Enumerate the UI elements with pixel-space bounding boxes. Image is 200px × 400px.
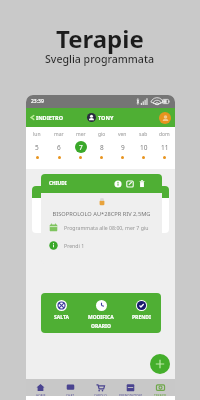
button[interactable]: sab <box>133 127 154 169</box>
other: Elimina <box>138 180 146 188</box>
button[interactable]: gio <box>91 127 112 169</box>
button[interactable]: ven <box>112 127 133 169</box>
staticText: gio <box>98 131 106 138</box>
staticText: mer <box>76 131 86 138</box>
button[interactable]: Aggiungi <box>150 354 170 374</box>
button[interactable]: PRENOTAZIONI <box>115 379 145 400</box>
staticText: TERAPIE <box>154 394 167 398</box>
staticText: lun <box>33 131 41 138</box>
staticText: INDIETRO <box>36 114 63 121</box>
staticText: CHIUDI <box>49 180 67 187</box>
staticText: ven <box>118 131 127 138</box>
staticText: MODIFICA <box>88 314 114 321</box>
button[interactable]: dom <box>154 127 175 169</box>
staticText: ORARIO <box>91 323 111 330</box>
staticText: CAROLO <box>94 394 107 398</box>
staticText: SALTA <box>54 314 69 321</box>
staticText: 11 <box>161 143 169 152</box>
button[interactable]: MODIFICA <box>81 293 121 333</box>
other: Info <box>114 180 122 188</box>
button[interactable]: mar <box>48 127 70 169</box>
button[interactable]: lun <box>26 127 48 169</box>
button[interactable]: HOME <box>26 379 55 400</box>
staticText: Programmata alle 08:00, mer 7 giu <box>64 224 149 231</box>
other: Modifica <box>126 180 134 188</box>
staticText: sab <box>139 131 148 138</box>
staticText: 8 <box>100 143 104 152</box>
staticText: BISOPROLOLO AU*28CPR RIV 2,5MG <box>41 210 162 218</box>
staticText: Prendi 1 <box>64 242 85 249</box>
staticText: 6 <box>57 143 61 152</box>
staticText: Sveglia programmata <box>45 52 155 66</box>
staticText: TONY <box>98 114 114 121</box>
button[interactable]: SALTA <box>41 293 81 333</box>
button[interactable]: Profilo <box>159 112 171 124</box>
button[interactable]: CHAT <box>55 379 85 400</box>
staticText: 9 <box>121 143 125 152</box>
staticText: dom <box>159 131 170 138</box>
button[interactable]: PRENDI <box>121 293 161 333</box>
staticText: PRENDI <box>132 314 151 321</box>
staticText: CHAT <box>66 394 74 398</box>
staticText: mar <box>54 131 64 138</box>
staticText: 7 <box>79 143 83 152</box>
staticText: 23:39 <box>31 98 44 105</box>
button[interactable]: TERAPIE <box>145 379 175 400</box>
staticText: Terapie <box>56 22 144 55</box>
staticText: HOME <box>36 394 46 398</box>
staticText: 10 <box>140 143 148 152</box>
staticText: 5 <box>35 143 39 152</box>
button[interactable]: mer <box>70 127 91 169</box>
button[interactable]: CAROLO <box>85 379 115 400</box>
button[interactable]: CHIUDI <box>41 174 162 264</box>
staticText: PRENOTAZIONI <box>119 394 142 398</box>
